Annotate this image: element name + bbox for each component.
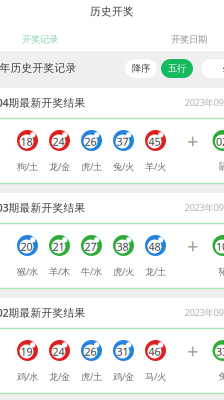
staticText: 27 bbox=[84, 239, 96, 254]
staticText: 鼠 bbox=[218, 161, 224, 172]
staticText: 兔/火 bbox=[113, 160, 134, 173]
staticText: 26 bbox=[84, 344, 96, 359]
staticText: 龙/土 bbox=[145, 265, 166, 278]
staticText: 羊/木 bbox=[49, 265, 70, 278]
staticText: 04期最新开奖结果 bbox=[0, 95, 85, 110]
staticText: 03期最新开奖结果 bbox=[0, 200, 85, 215]
staticText: 2023年09 bbox=[184, 306, 223, 319]
staticText: 46 bbox=[148, 344, 160, 359]
button[interactable]: 降序 bbox=[125, 59, 157, 78]
staticText: 兔 bbox=[218, 371, 224, 382]
staticText: 19 bbox=[20, 344, 32, 359]
staticText: 10 bbox=[216, 239, 224, 254]
staticText: 2023年09 bbox=[184, 96, 223, 109]
staticText: 猴/水 bbox=[17, 265, 38, 278]
staticText: + bbox=[187, 127, 198, 154]
staticText: 虎/土 bbox=[81, 370, 102, 383]
staticText: 开奖记录 bbox=[22, 34, 58, 45]
button[interactable]: 生肖 bbox=[201, 59, 224, 78]
button[interactable]: 开奖记录 bbox=[8, 28, 72, 50]
staticText: 虎/土 bbox=[81, 160, 102, 173]
staticText: 年历史开奖记录 bbox=[0, 61, 76, 74]
staticText: 龙/金 bbox=[49, 160, 70, 173]
staticText: 狗/土 bbox=[17, 160, 38, 173]
staticText: 37 bbox=[116, 134, 128, 149]
staticText: 马/火 bbox=[145, 370, 166, 383]
staticText: 鸡/金 bbox=[113, 370, 134, 383]
staticText: 鸡/水 bbox=[17, 370, 38, 383]
staticText: 2023年09 bbox=[184, 201, 223, 214]
button[interactable]: 开奖日期 bbox=[157, 28, 221, 50]
staticText: 48 bbox=[148, 239, 160, 254]
staticText: 开奖日期 bbox=[171, 34, 207, 45]
staticText: 18 bbox=[20, 134, 32, 149]
staticText: 历史开奖 bbox=[90, 5, 134, 18]
staticText: 02 bbox=[216, 134, 224, 149]
staticText: 生肖 bbox=[222, 63, 224, 74]
staticText: 牛/水 bbox=[81, 265, 102, 278]
staticText: + bbox=[187, 232, 198, 259]
staticText: 虎/火 bbox=[113, 265, 134, 278]
staticText: 24 bbox=[52, 134, 64, 149]
staticText: 45 bbox=[148, 134, 160, 149]
staticText: 21 bbox=[52, 239, 64, 254]
staticText: 24 bbox=[52, 344, 64, 359]
staticText: 26 bbox=[84, 134, 96, 149]
button[interactable]: 五行 bbox=[161, 59, 193, 78]
staticText: 31 bbox=[116, 344, 128, 359]
staticText: 猪 bbox=[218, 266, 224, 277]
staticText: 38 bbox=[116, 239, 128, 254]
staticText: + bbox=[187, 337, 198, 364]
staticText: 龙/金 bbox=[49, 370, 70, 383]
staticText: 33 bbox=[216, 344, 224, 359]
staticText: 羊/火 bbox=[145, 160, 166, 173]
staticText: 02期最新开奖结果 bbox=[0, 305, 85, 320]
staticText: 五行 bbox=[168, 63, 186, 74]
staticText: 降序 bbox=[132, 63, 150, 74]
staticText: 20 bbox=[20, 239, 32, 254]
